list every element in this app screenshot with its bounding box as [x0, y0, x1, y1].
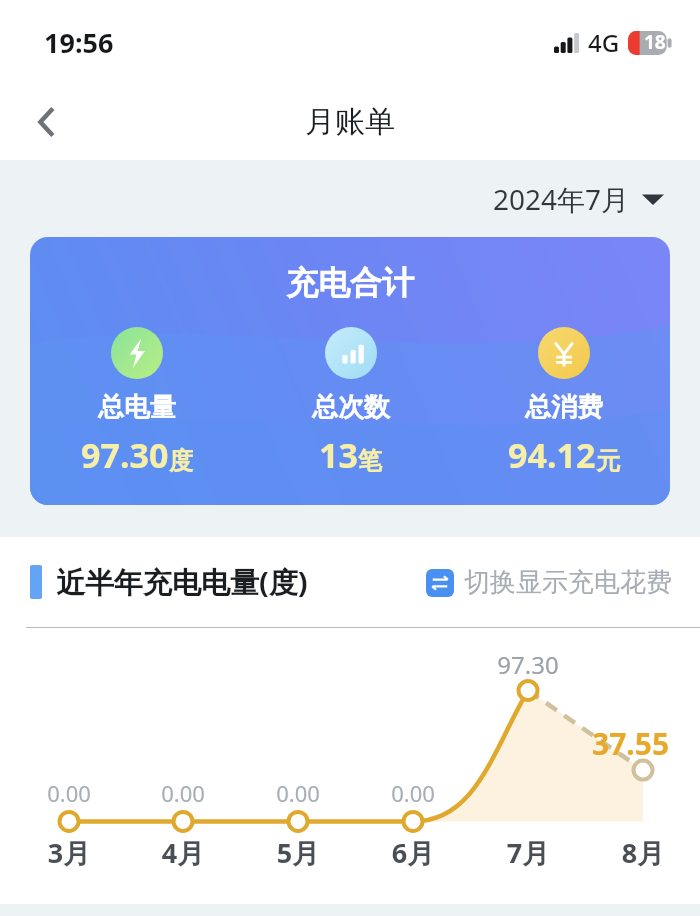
button[interactable]: Back	[18, 96, 70, 148]
staticText: 0.00	[148, 778, 218, 808]
staticText: 元	[596, 446, 620, 476]
staticText: 总消费	[525, 391, 603, 424]
staticText: 4月	[148, 834, 218, 871]
staticText: 2024年7月	[493, 180, 630, 218]
staticText: 6月	[378, 834, 448, 871]
staticText: 8月	[608, 834, 678, 871]
staticText: 5月	[263, 834, 333, 871]
button[interactable]: 充电合计	[30, 237, 670, 505]
staticText: 月账单	[305, 103, 395, 141]
staticText: 0.00	[34, 778, 104, 808]
staticText: 近半年充电电量(度)	[56, 562, 308, 602]
staticText: 7月	[493, 834, 563, 871]
staticText: 0.00	[378, 778, 448, 808]
staticText: 切换显示充电花费	[464, 566, 672, 599]
button[interactable]: 总消费	[457, 327, 670, 478]
staticText: 94.12	[508, 432, 596, 478]
staticText: 97.30	[483, 648, 573, 681]
staticText: 13	[319, 432, 358, 478]
button[interactable]: 2024年7月	[485, 172, 672, 226]
staticText: 18	[644, 29, 666, 55]
staticText: 笔	[358, 446, 382, 476]
staticText: 度	[169, 446, 193, 476]
staticText: 37.55	[592, 723, 670, 764]
staticText: 0.00	[263, 778, 333, 808]
staticText: 总电量	[98, 391, 176, 424]
button[interactable]: 切换显示充电花费	[422, 562, 676, 603]
staticText: 4G	[588, 26, 620, 59]
staticText: 总次数	[312, 391, 390, 424]
staticText: 97.30	[81, 432, 169, 478]
button[interactable]: 总电量	[30, 327, 244, 478]
staticText: 19:56	[44, 24, 114, 61]
staticText: 3月	[34, 834, 104, 871]
button[interactable]: 总次数	[244, 327, 457, 478]
staticText: 充电合计	[30, 263, 670, 303]
